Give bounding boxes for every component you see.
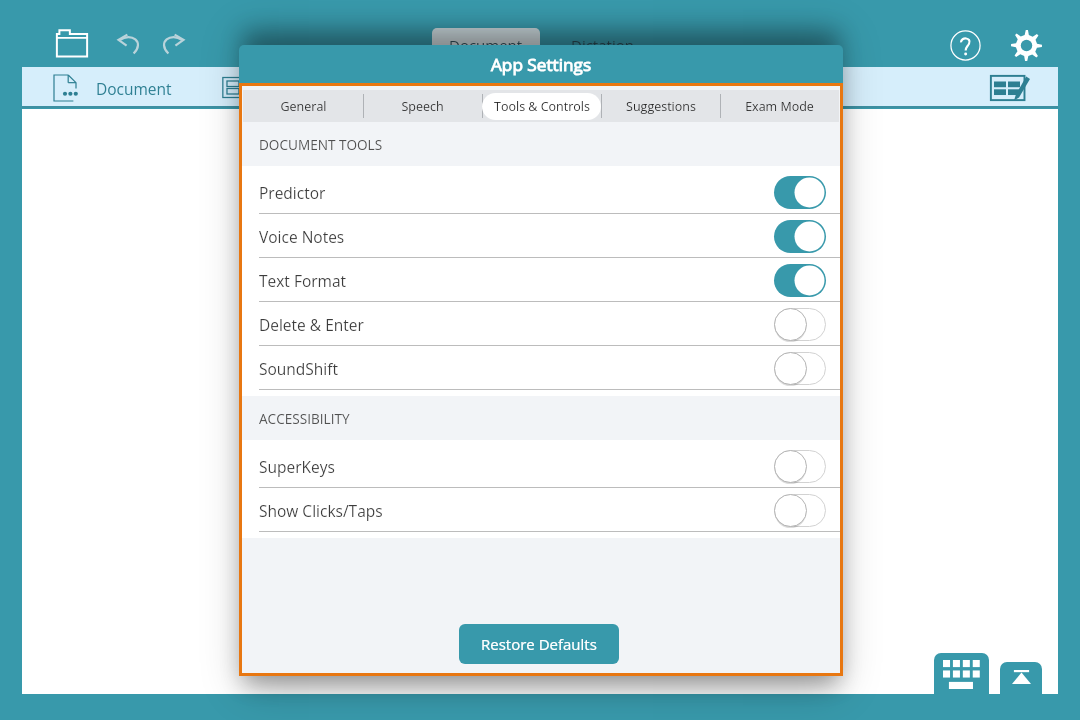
staticText: Tools & Controls <box>494 98 590 115</box>
staticText: Document <box>96 78 172 99</box>
staticText: Predictor <box>259 182 326 203</box>
button[interactable]: SoundShift <box>242 346 840 390</box>
button[interactable]: Edit table <box>988 67 1032 108</box>
button[interactable]: Help <box>945 25 985 65</box>
staticText: Restore Defaults <box>481 634 597 654</box>
staticText: Exam Mode <box>745 98 814 115</box>
button[interactable]: SuperKeys <box>242 444 840 488</box>
button[interactable]: Delete & Enter <box>242 302 840 346</box>
staticText: SoundShift <box>259 358 338 379</box>
button[interactable]: Exam Mode <box>720 90 839 122</box>
staticText: Document <box>449 35 523 55</box>
button[interactable]: Predictor <box>242 170 840 214</box>
staticText: Text Format <box>259 270 347 291</box>
button[interactable]: List layout <box>212 67 252 108</box>
staticText: SuperKeys <box>259 456 335 477</box>
button[interactable]: Settings <box>1006 25 1046 65</box>
button[interactable]: Suggestions <box>601 90 720 122</box>
button[interactable]: Restore Defaults <box>459 624 619 664</box>
staticText: DOCUMENT TOOLS <box>259 135 383 154</box>
button[interactable]: Tools & Controls <box>482 93 601 120</box>
staticText: Dictation <box>571 35 634 55</box>
button[interactable]: Text Format <box>242 258 840 302</box>
staticText: Show Clicks/Taps <box>259 500 383 521</box>
button[interactable]: Speech <box>363 90 482 122</box>
staticText: General <box>280 98 327 115</box>
button[interactable]: Voice Notes <box>242 214 840 258</box>
button[interactable]: Dictation <box>548 28 656 62</box>
staticText: Suggestions <box>626 98 696 115</box>
staticText: Delete & Enter <box>259 314 364 335</box>
staticText: Voice Notes <box>259 226 345 247</box>
button[interactable]: Undo <box>116 28 146 58</box>
button[interactable]: Collapse toolbar <box>1000 662 1042 694</box>
button[interactable]: Document <box>432 28 540 62</box>
button[interactable]: Document <box>54 67 254 108</box>
button[interactable]: Show Clicks/Taps <box>242 488 840 532</box>
button[interactable]: Open folder <box>52 23 92 63</box>
button[interactable]: General <box>243 90 363 122</box>
staticText: App Settings <box>491 53 592 76</box>
button[interactable]: Redo <box>156 28 186 58</box>
button[interactable]: Show keyboard <box>934 653 989 694</box>
staticText: ACCESSIBILITY <box>259 409 350 428</box>
staticText: Speech <box>401 98 444 115</box>
